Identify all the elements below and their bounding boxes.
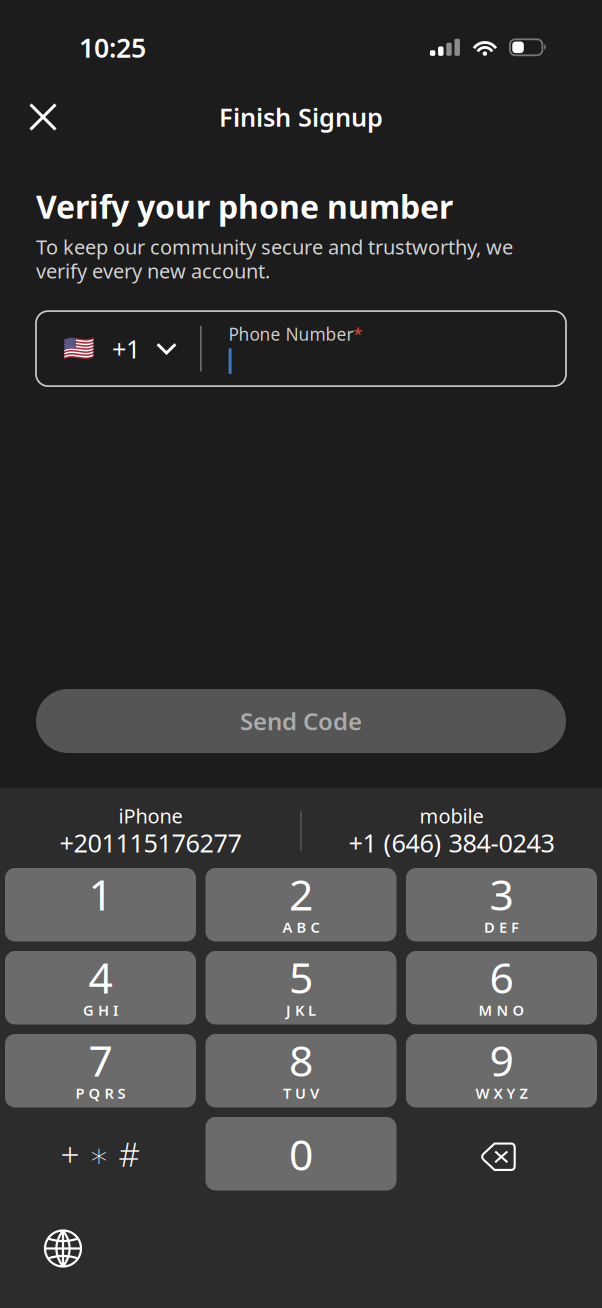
button[interactable]: Send Code [36,689,566,753]
button[interactable]: 8 [205,1034,396,1107]
staticText: 3 [489,866,513,922]
staticText: P Q R S [75,1083,125,1103]
staticText: mobile [419,802,483,829]
button[interactable]: Close [14,89,72,145]
staticText: verify every new account. [36,258,270,284]
button[interactable]: Plus, star, pound [5,1117,196,1190]
staticText: T U V [283,1083,319,1103]
staticText: Verify your phone number [36,185,453,227]
staticText: Send Code [240,705,362,737]
staticText: A B C [282,917,319,937]
staticText: 2 [289,866,313,922]
button[interactable]: 5 [205,951,396,1024]
button[interactable]: 7 [5,1034,196,1107]
button[interactable]: 9 [406,1034,597,1107]
staticText: 6 [489,949,513,1005]
staticText: 5 [289,949,313,1005]
staticText: 1 [88,866,112,922]
staticText: * [354,323,363,344]
staticText: 10:25 [79,30,146,65]
staticText: + ∗ # [60,1132,140,1176]
button[interactable]: 6 [406,951,597,1024]
staticText: +1 (646) 384-0243 [348,826,554,860]
staticText: iPhone [118,802,182,829]
staticText: +1 [112,332,140,365]
button[interactable]: 1 [5,868,196,941]
staticText: 9 [489,1032,513,1088]
button[interactable]: 0 [205,1117,396,1190]
staticText: To keep our community secure and trustwo… [36,233,513,260]
button[interactable]: mobile [301,802,602,860]
button[interactable]: Change keyboard [35,1220,91,1276]
staticText: J K L [286,1000,316,1020]
staticText: Finish Signup [219,100,383,134]
staticText: W X Y Z [475,1083,527,1103]
staticText: G H I [83,1000,118,1020]
button[interactable]: Country code +1 [36,312,200,386]
staticText: 8 [289,1032,313,1088]
staticText: 🇺🇸 [63,334,95,363]
button[interactable]: iPhone [0,802,301,860]
staticText: 0 [289,1126,313,1182]
staticText: 4 [88,949,112,1005]
button[interactable]: 2 [205,868,396,941]
staticText: D E F [484,917,519,937]
button[interactable]: Delete [406,1117,597,1190]
staticText: M N O [478,1000,524,1020]
button[interactable]: 4 [5,951,196,1024]
staticText: +201115176277 [59,826,241,860]
staticText: 7 [88,1032,112,1088]
button[interactable]: 3 [406,868,597,941]
staticText: Phone Number [229,323,354,346]
